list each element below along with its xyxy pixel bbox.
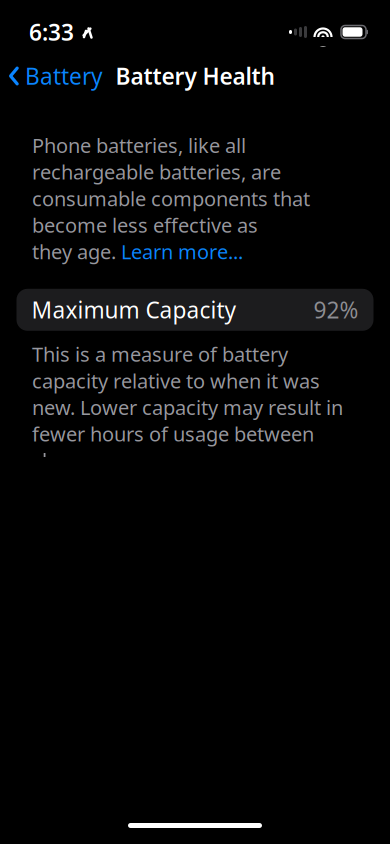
staticText: This is a measure of battery capacity re… [32, 341, 343, 474]
button[interactable]: Learn more... [121, 238, 243, 265]
staticText: To reduce battery ageing, iPhone learns … [32, 762, 339, 844]
staticText: consumable components that become less e… [32, 185, 310, 238]
staticText: they age. [32, 238, 121, 265]
button[interactable]: Battery [0, 55, 103, 97]
staticText: Battery [25, 61, 103, 91]
staticText: Maximum Capacity [31, 295, 236, 325]
staticText: 92% [313, 295, 358, 325]
staticText: Learn more... [121, 238, 243, 265]
staticText: 6:33 [29, 17, 74, 47]
staticText: Battery Health [115, 61, 274, 91]
staticText: Phone batteries, like all rechargeable b… [32, 132, 281, 185]
button[interactable]: Maximum Capacity [16, 289, 373, 331]
